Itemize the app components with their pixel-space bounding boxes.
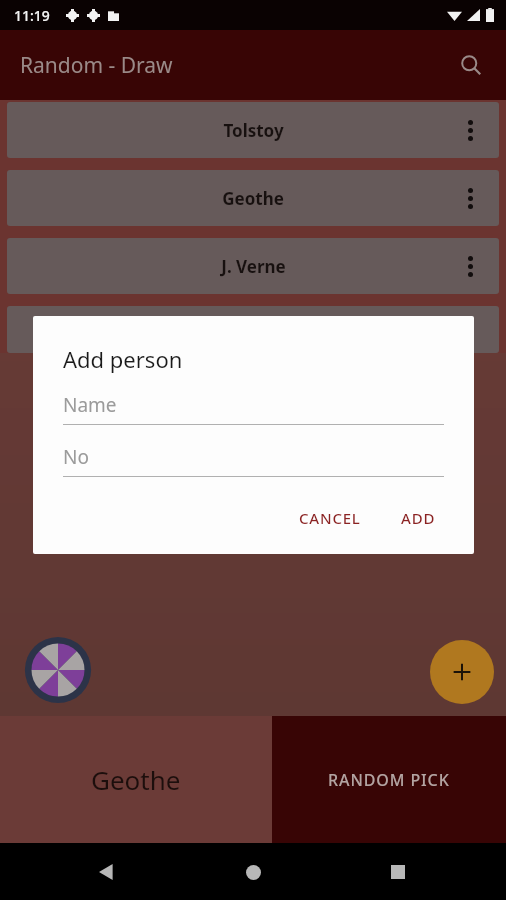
staticText: CANCEL: [299, 508, 361, 528]
staticText: No: [63, 444, 89, 470]
staticText: Name: [63, 392, 117, 418]
staticText: Tolstoy: [223, 119, 284, 142]
button[interactable]: Add person: [430, 640, 494, 704]
button[interactable]: Spin wheel: [22, 634, 94, 706]
button[interactable]: Search: [448, 42, 494, 88]
staticText: Geothe: [91, 762, 181, 797]
button[interactable]: RANDOM PICK: [272, 716, 506, 843]
staticText: Random - Draw: [20, 51, 173, 80]
button[interactable]: Home: [232, 851, 274, 893]
button[interactable]: Back: [86, 851, 128, 893]
button[interactable]: Geothe: [0, 716, 272, 843]
button[interactable]: ADD: [391, 500, 446, 536]
button[interactable]: More options: [453, 313, 487, 347]
button[interactable]: More options: [453, 181, 487, 215]
button[interactable]: More options: [453, 113, 487, 147]
button[interactable]: Name: [63, 392, 444, 425]
button[interactable]: J. Verne: [7, 238, 499, 294]
button[interactable]: CANCEL: [289, 500, 371, 536]
staticText: 11:19: [14, 6, 50, 25]
button[interactable]: More options: [453, 249, 487, 283]
staticText: RANDOM PICK: [328, 769, 450, 791]
staticText: ADD: [401, 508, 436, 528]
button[interactable]: Recent apps: [377, 851, 419, 893]
staticText: Add person: [63, 344, 183, 374]
button[interactable]: More options: [7, 306, 499, 353]
button[interactable]: No: [63, 444, 444, 477]
button[interactable]: Tolstoy: [7, 102, 499, 158]
staticText: Geothe: [222, 187, 284, 210]
button[interactable]: Geothe: [7, 170, 499, 226]
staticText: J. Verne: [221, 255, 286, 278]
